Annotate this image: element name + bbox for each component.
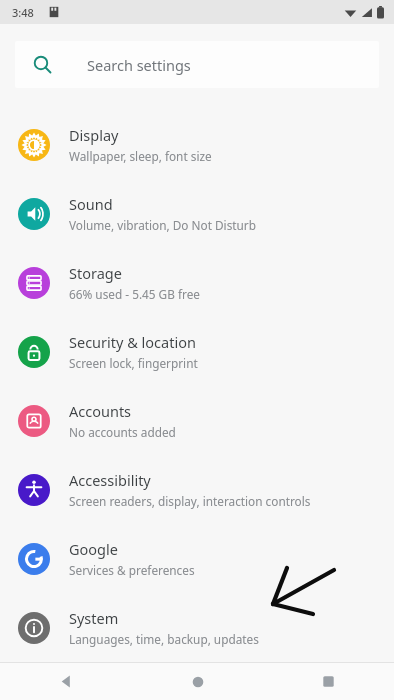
button[interactable]: Recent apps: [263, 663, 394, 700]
button[interactable]: Home: [132, 663, 263, 700]
button[interactable]: Accessibility: [0, 455, 394, 524]
button[interactable]: Accounts: [0, 386, 394, 455]
button[interactable]: Storage: [0, 248, 394, 317]
button[interactable]: Display: [0, 110, 394, 179]
staticText: Screen readers, display, interaction con…: [69, 493, 311, 509]
staticText: Security & location: [69, 332, 196, 352]
button[interactable]: Google: [0, 524, 394, 593]
button[interactable]: Back: [0, 663, 132, 700]
staticText: Screen lock, fingerprint: [69, 355, 198, 371]
staticText: Google: [69, 539, 118, 559]
staticText: System: [69, 608, 119, 628]
staticText: Volume, vibration, Do Not Disturb: [69, 217, 256, 233]
staticText: Storage: [69, 263, 122, 283]
staticText: Languages, time, backup, updates: [69, 631, 259, 647]
staticText: No accounts added: [69, 424, 176, 440]
staticText: Accounts: [69, 401, 132, 421]
staticText: 66% used - 5.45 GB free: [69, 286, 200, 302]
staticText: Accessibility: [69, 470, 151, 490]
staticText: Sound: [69, 194, 113, 214]
staticText: Display: [69, 125, 119, 145]
button[interactable]: Search settings: [15, 41, 379, 88]
button[interactable]: Security & location: [0, 317, 394, 386]
staticText: Wallpaper, sleep, font size: [69, 148, 212, 164]
button[interactable]: System: [0, 593, 394, 662]
staticText: Search settings: [87, 55, 191, 75]
staticText: 3:48: [12, 5, 34, 20]
staticText: Services & preferences: [69, 562, 195, 578]
button[interactable]: Sound: [0, 179, 394, 248]
